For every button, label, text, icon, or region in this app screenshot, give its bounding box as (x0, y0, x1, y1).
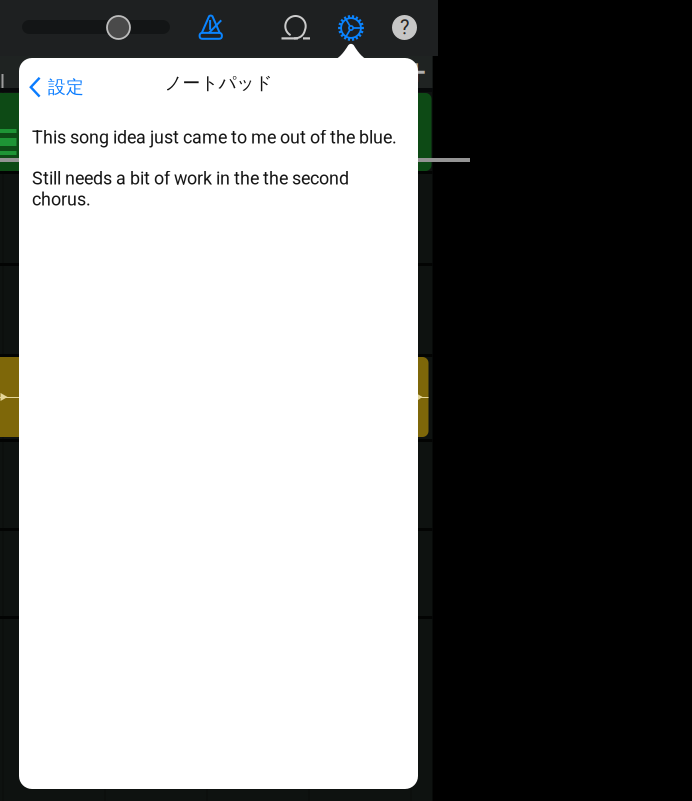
staticText: This song idea just came to me out of th… (32, 127, 397, 148)
button[interactable]: 設定 (20, 69, 96, 105)
button[interactable]: Add track (402, 56, 430, 88)
staticText: 設定 (48, 76, 84, 98)
button[interactable]: Metronome (197, 13, 227, 47)
button[interactable]: Loop (280, 13, 312, 47)
button[interactable]: Help (392, 15, 417, 40)
staticText: Still needs a bit of work in the the sec… (32, 168, 349, 210)
staticText: ? (400, 16, 409, 39)
staticText: + (406, 52, 426, 92)
button[interactable]: Settings (335, 12, 367, 44)
staticText: ノートパッド (164, 72, 272, 94)
